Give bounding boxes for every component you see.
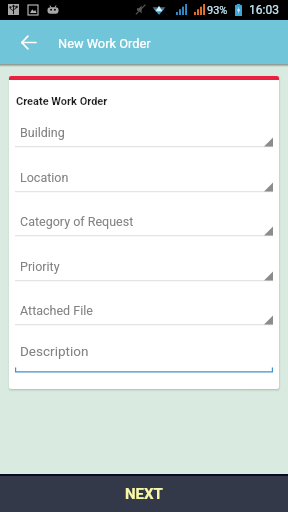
button[interactable]: Description xyxy=(9,325,279,389)
button[interactable]: Priority xyxy=(9,236,279,281)
staticText: Building xyxy=(20,125,65,140)
staticText: Create Work Order xyxy=(16,95,108,108)
staticText: Description xyxy=(20,343,89,359)
staticText: New Work Order xyxy=(58,36,151,51)
button[interactable]: Category of Request xyxy=(9,192,279,236)
staticText: 93% xyxy=(207,4,228,17)
staticText: NEXT xyxy=(125,485,163,503)
button[interactable]: Attached File xyxy=(9,281,279,325)
staticText: Attached File xyxy=(20,303,93,318)
button[interactable]: Location xyxy=(9,147,279,192)
button[interactable]: Back xyxy=(13,27,44,58)
staticText: 16:03 xyxy=(249,3,279,17)
button[interactable]: NEXT xyxy=(0,474,288,512)
staticText: Location xyxy=(20,170,69,185)
staticText: Category of Request xyxy=(20,214,134,229)
staticText: Priority xyxy=(20,259,60,274)
